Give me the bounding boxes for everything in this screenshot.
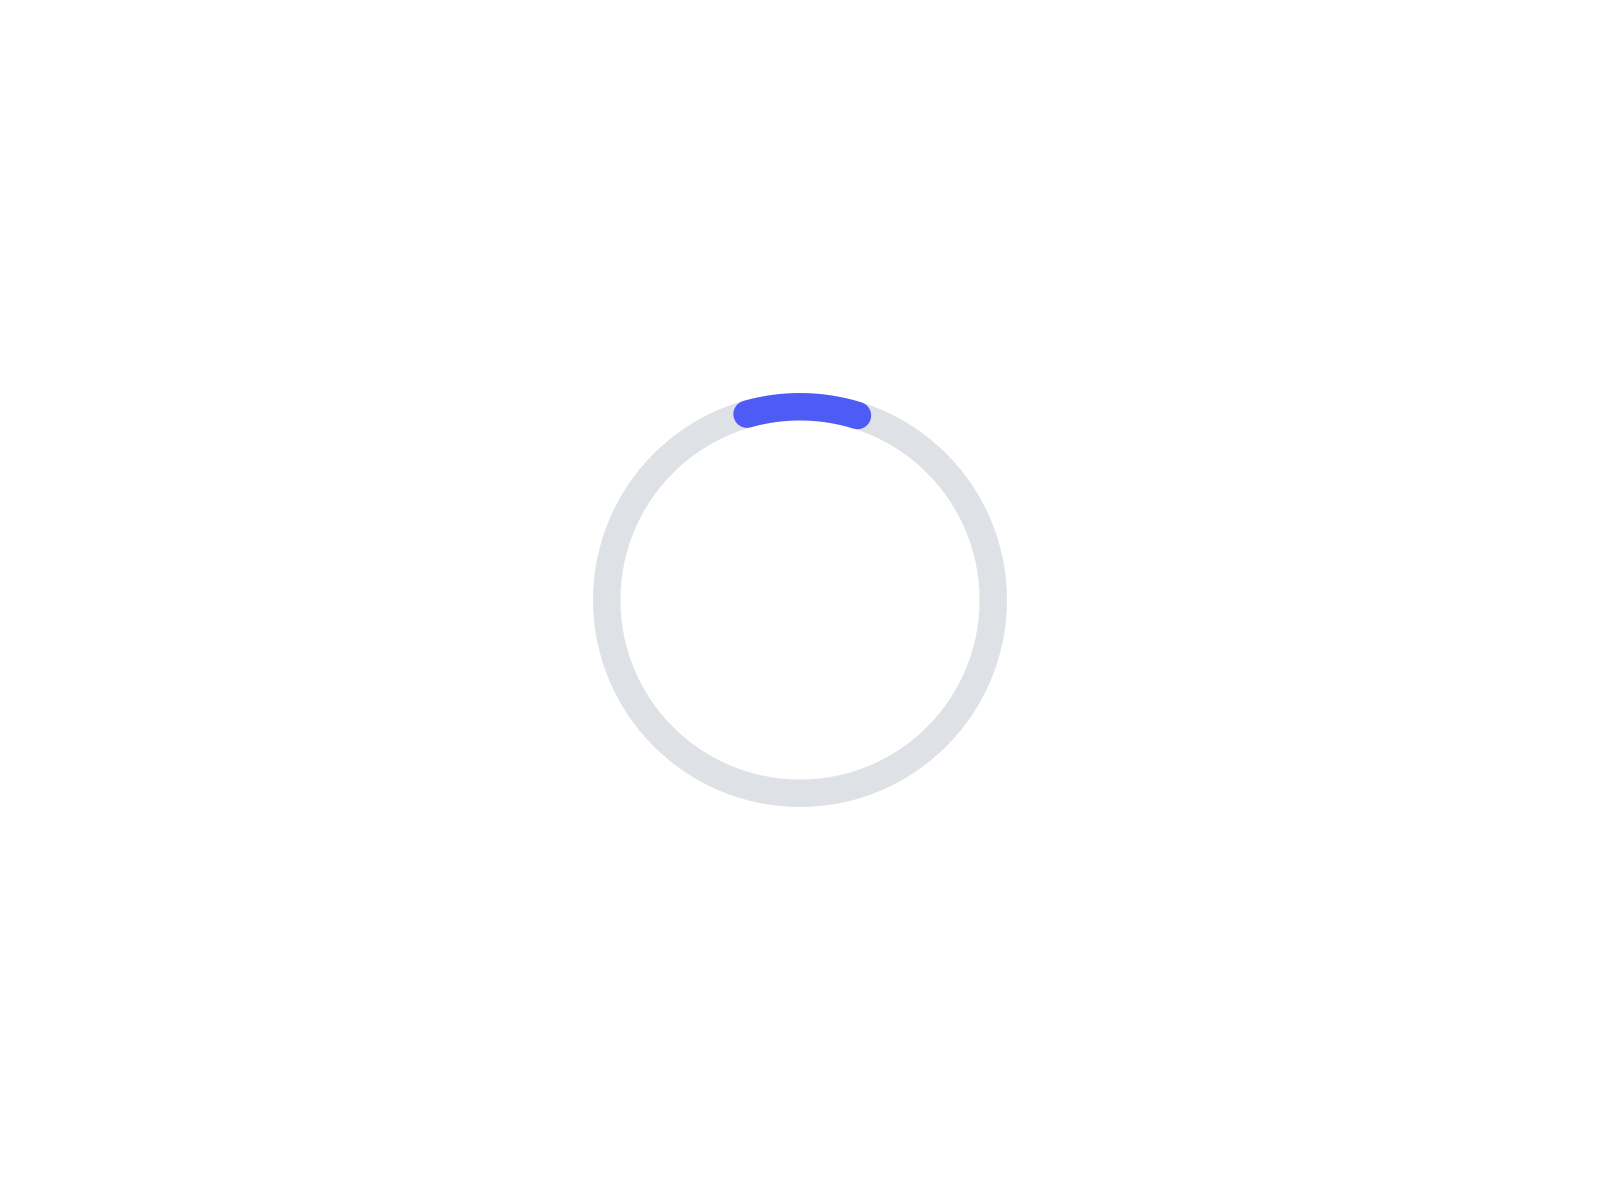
group: Loading bbox=[593, 393, 1007, 807]
